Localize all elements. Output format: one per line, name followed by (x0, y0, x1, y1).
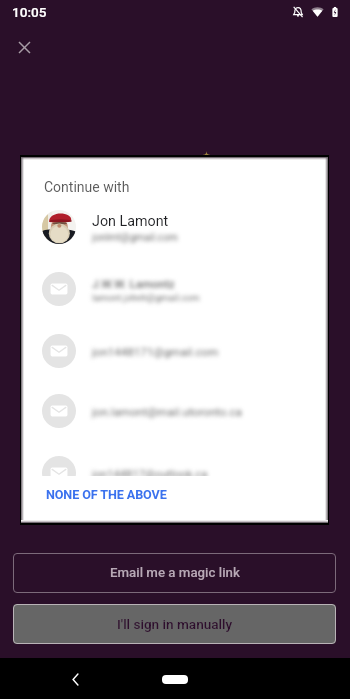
staticText: 10:05 (12, 4, 47, 20)
button[interactable]: Email me a magic link (13, 553, 336, 593)
staticText: jonlmt@gmail.com (92, 232, 178, 244)
staticText: Jon Lamont (92, 213, 169, 230)
staticText: Email me a magic link (110, 565, 240, 581)
button[interactable]: jon.lamont@mail.utoronto.ca (21, 388, 328, 434)
staticText: Continue with (44, 179, 130, 195)
staticText: lamont.johnh@gmail.com (92, 292, 200, 303)
button[interactable]: Jon Lamont (21, 204, 328, 250)
button[interactable]: jon1448171@gmail.com (21, 328, 328, 374)
button[interactable]: jon144817@outlook.ca (21, 450, 328, 476)
button[interactable]: Home (162, 675, 188, 684)
staticText: jon1448171@gmail.com (92, 345, 219, 359)
button[interactable]: Close (6, 29, 42, 65)
staticText: I'll sign in manually (117, 616, 233, 632)
staticText: J.W.W. Lamontz (92, 277, 175, 290)
button[interactable]: Back (61, 665, 89, 693)
button[interactable]: I'll sign in manually (13, 604, 336, 644)
staticText: jon.lamont@mail.utoronto.ca (92, 405, 242, 419)
button[interactable]: NONE OF THE ABOVE (38, 481, 175, 508)
button[interactable]: J.W.W. Lamontz (21, 266, 328, 312)
staticText: NONE OF THE ABOVE (46, 487, 167, 502)
staticText: jon144817@outlook.ca (92, 468, 208, 476)
